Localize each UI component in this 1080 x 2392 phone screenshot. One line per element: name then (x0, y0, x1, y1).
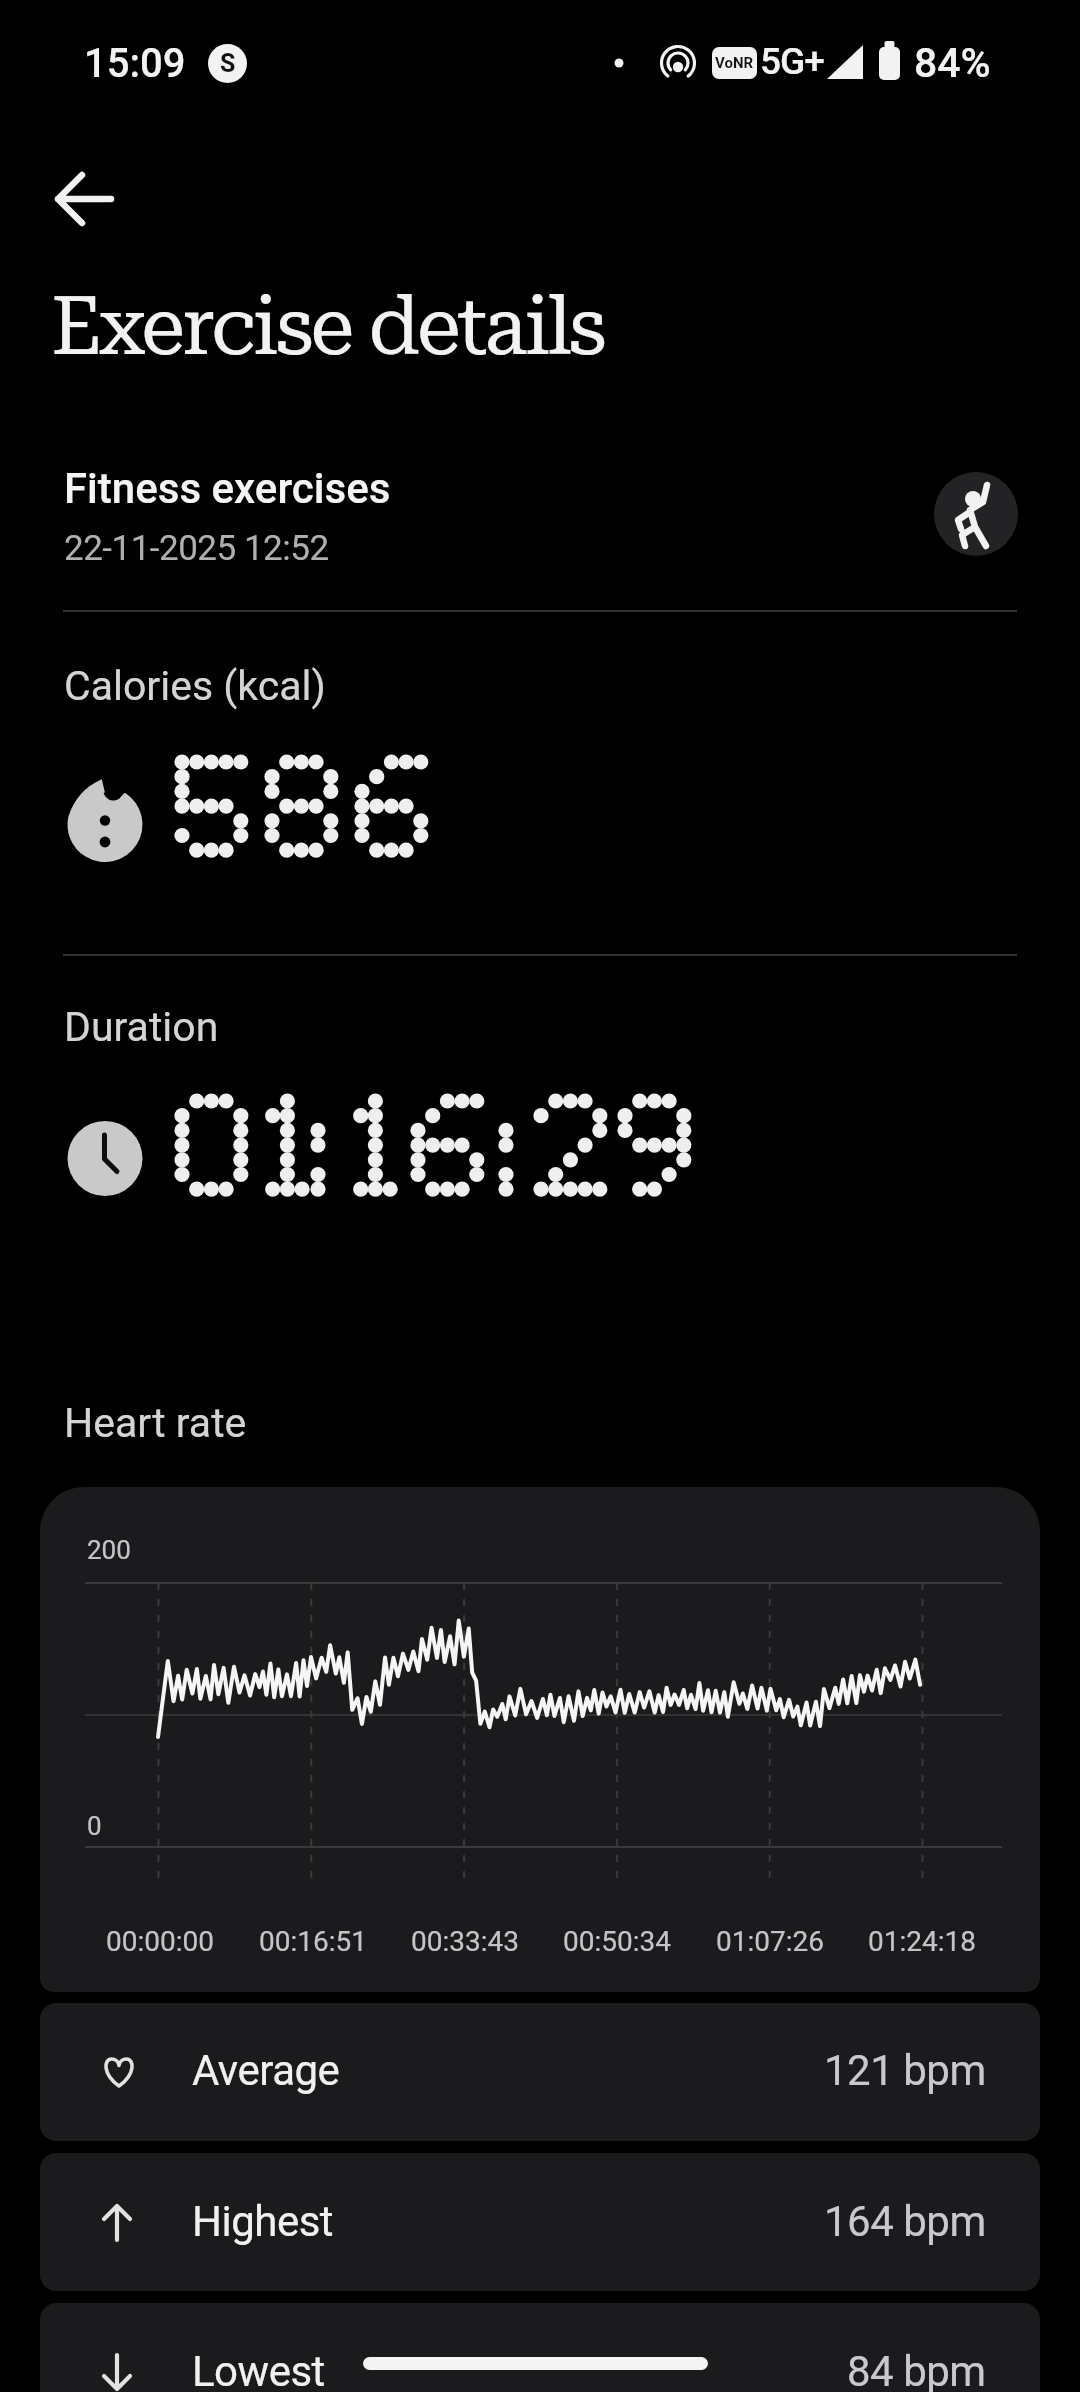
button[interactable] (934, 472, 1018, 556)
staticText: Fitness exercises (64, 464, 391, 513)
staticText: Heart rate (64, 1399, 247, 1447)
button[interactable] (40, 2003, 1040, 2141)
staticText: S (220, 49, 236, 78)
staticText: Duration (64, 1003, 219, 1051)
staticText: 22-11-2025 12:52 (64, 528, 329, 569)
staticText: 01:24:18 (868, 1925, 976, 1958)
staticText: 00:16:51 (259, 1925, 367, 1958)
staticText: 00:50:34 (563, 1925, 671, 1958)
staticText: Lowest (192, 2347, 325, 2392)
staticText: 15:09 (84, 40, 186, 87)
staticText: 84 bpm (847, 2347, 986, 2392)
staticText: 01:07:26 (716, 1925, 824, 1958)
staticText: 5G+ (760, 40, 824, 83)
staticText: Average (192, 2046, 340, 2095)
staticText: 0 (87, 1811, 102, 1841)
staticText: Exercise details (51, 280, 604, 374)
button[interactable] (40, 2303, 1040, 2392)
staticText: 164 bpm (824, 2197, 986, 2246)
staticText: Highest (192, 2197, 334, 2246)
staticText: Calories (kcal) (64, 662, 326, 710)
staticText: 84% (914, 39, 991, 87)
staticText: 00:33:43 (411, 1925, 519, 1958)
button[interactable] (48, 161, 124, 237)
staticText: VoNR (715, 54, 754, 72)
staticText: 121 bpm (824, 2046, 986, 2095)
button[interactable] (40, 2153, 1040, 2291)
staticText: 00:00:00 (106, 1925, 214, 1958)
staticText: 200 (87, 1535, 131, 1565)
